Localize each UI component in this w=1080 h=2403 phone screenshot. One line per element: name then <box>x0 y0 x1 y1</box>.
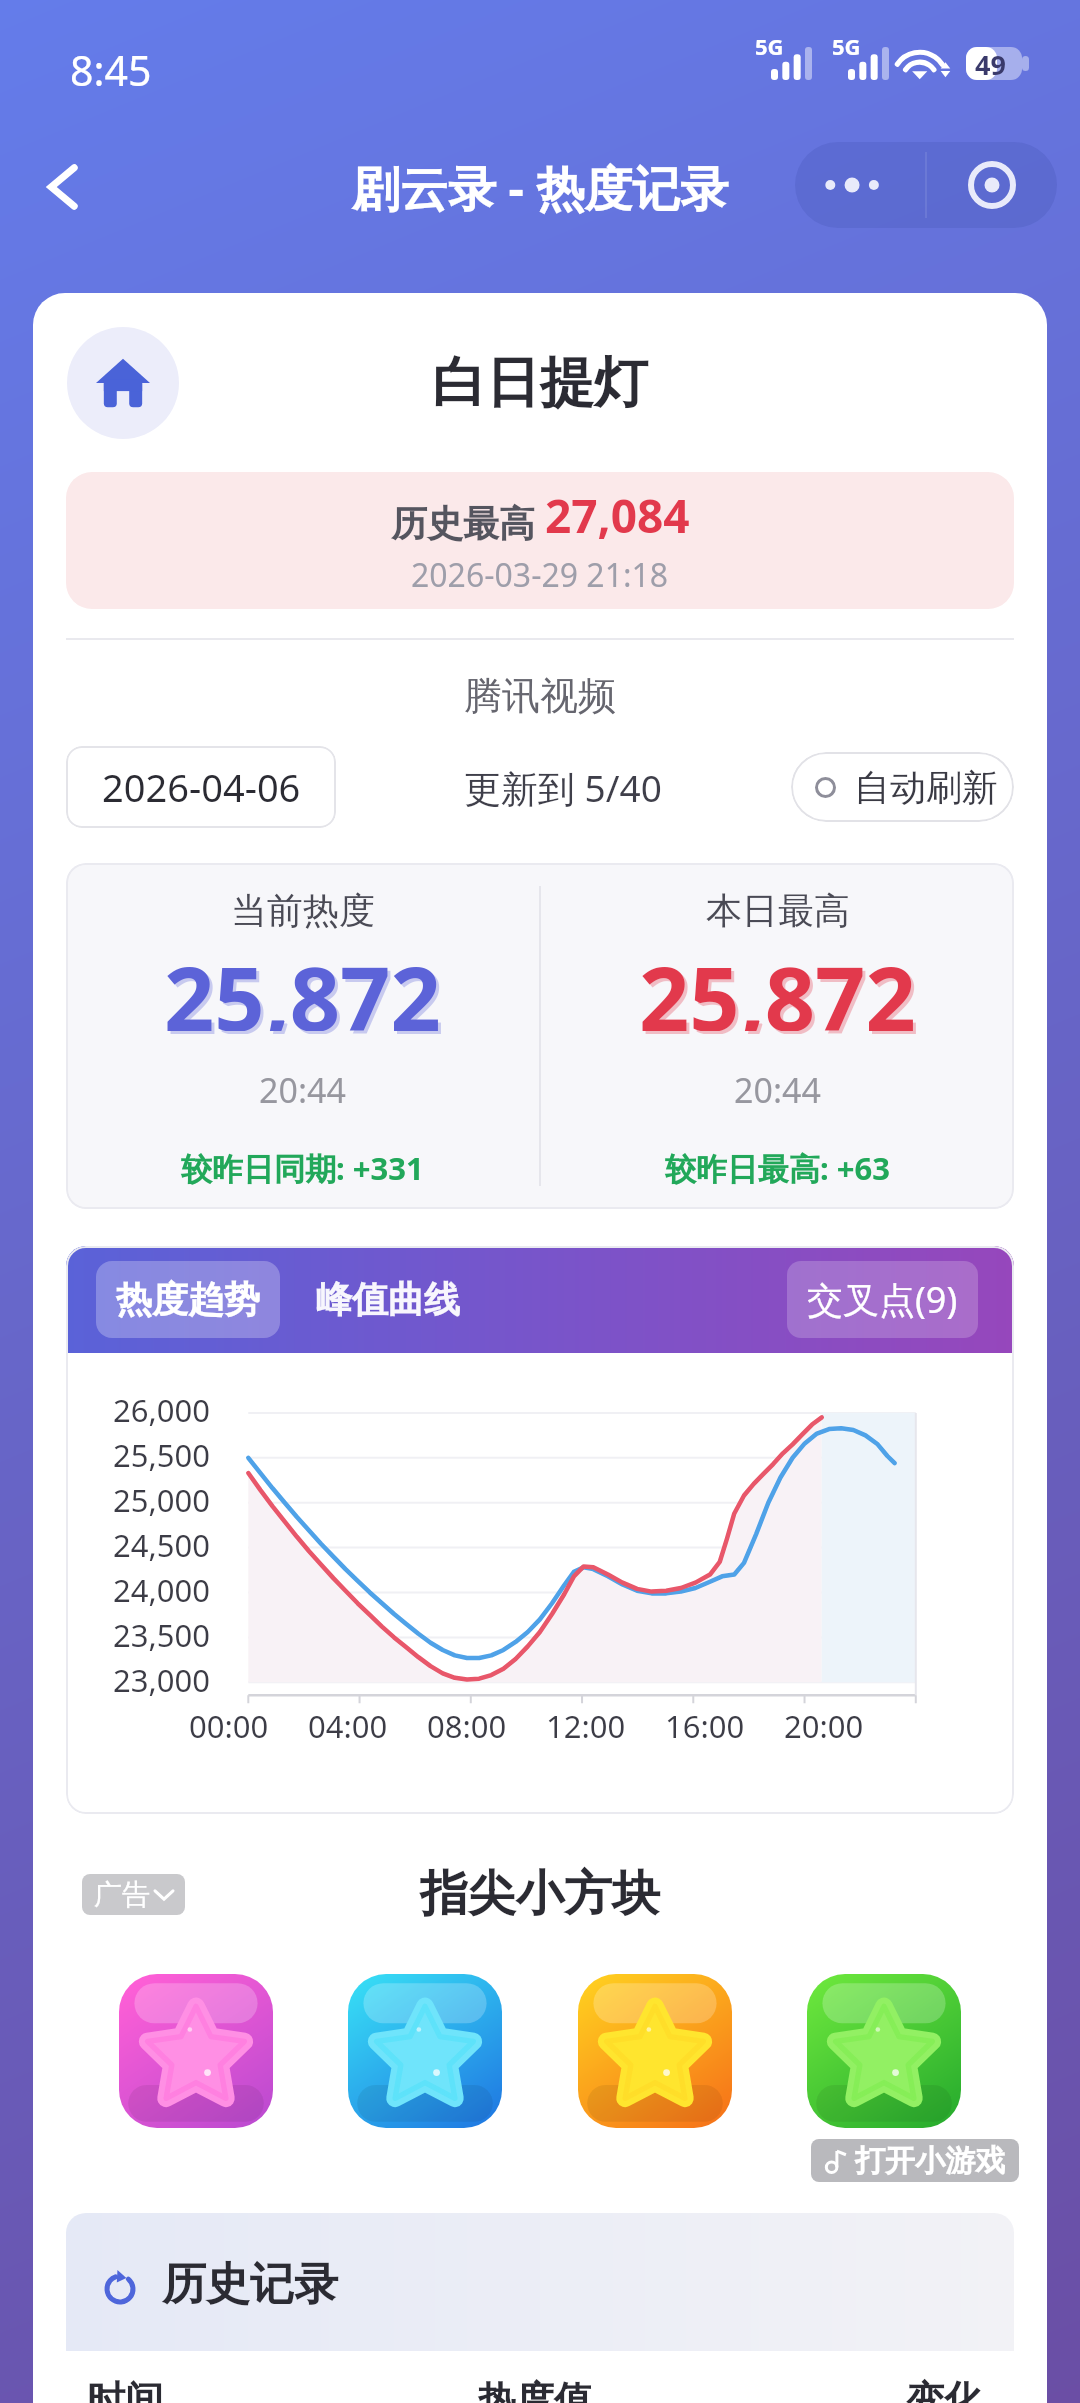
staticText: 20:44 <box>734 1067 821 1113</box>
button[interactable]: 交叉点(9) <box>787 1261 978 1338</box>
staticText: 00:00 <box>189 1705 269 1747</box>
button[interactable]: 峰值曲线 <box>296 1261 480 1338</box>
staticText: 峰值曲线 <box>316 1277 460 1322</box>
button[interactable]: Open mini game <box>807 1974 961 2128</box>
staticText: 本日最高 <box>706 888 850 933</box>
staticText: 较昨日最高: +63 <box>665 1147 890 1189</box>
button[interactable]: Back <box>32 155 96 219</box>
button[interactable]: Home <box>67 327 179 439</box>
staticText: 27,084 <box>545 484 690 547</box>
button[interactable]: 热度趋势 <box>96 1261 280 1338</box>
staticText: 23,500 <box>113 1614 210 1656</box>
staticText: 23,000 <box>113 1659 210 1701</box>
button[interactable]: More options <box>795 142 925 228</box>
staticText: 04:00 <box>308 1705 388 1747</box>
button[interactable]: Open mini game <box>348 1974 502 2128</box>
staticText: 当前热度 <box>231 888 375 933</box>
staticText: 打开小游戏 <box>855 2142 1005 2180</box>
staticText: 广告 <box>94 1877 150 1912</box>
staticText: 剧云录 - 热度记录 <box>352 155 729 221</box>
staticText: 24,500 <box>113 1524 210 1566</box>
staticText: 历史最高 <box>391 498 545 547</box>
staticText: 更新到 5/40 <box>464 762 662 813</box>
staticText: 交叉点(9) <box>807 1275 958 1324</box>
staticText: 24,000 <box>113 1569 210 1611</box>
staticText: 时间 <box>87 2376 386 2403</box>
staticText: 8:45 <box>70 42 152 98</box>
staticText: 2026-04-06 <box>102 761 301 813</box>
staticText: 16:00 <box>665 1705 745 1747</box>
staticText: 25,872 <box>639 937 916 1031</box>
staticText: 较昨日同期: +331 <box>181 1147 424 1189</box>
button[interactable]: 广告 <box>82 1874 185 1915</box>
button[interactable]: 2026-04-06 <box>66 746 336 828</box>
staticText: 26,000 <box>113 1389 210 1431</box>
button[interactable]: 自动刷新 <box>791 752 1014 822</box>
button[interactable]: Close mini program <box>927 142 1057 228</box>
staticText: 白日提灯 <box>432 349 648 417</box>
staticText: 指尖小方块 <box>420 1864 660 1924</box>
button[interactable]: 打开小游戏 <box>811 2139 1019 2182</box>
staticText: 25,872 <box>642 940 919 1034</box>
staticText: 49 <box>975 46 1006 79</box>
staticText: 热度趋势 <box>116 1277 260 1322</box>
staticText: 25,872 <box>167 940 444 1034</box>
staticText: 25,872 <box>164 937 441 1031</box>
staticText: 自动刷新 <box>854 765 998 810</box>
staticText: 5G <box>755 31 784 61</box>
staticText: 20:00 <box>784 1705 864 1747</box>
staticText: 变化 <box>684 2376 982 2403</box>
staticText: 20:44 <box>259 1067 346 1113</box>
staticText: 5G <box>832 31 861 61</box>
button[interactable]: Open mini game <box>578 1974 732 2128</box>
staticText: 25,000 <box>113 1479 210 1521</box>
staticText: 2026-03-29 21:18 <box>411 553 669 597</box>
staticText: 热度值 <box>386 2376 684 2403</box>
staticText: 腾讯视频 <box>33 672 1047 720</box>
staticText: 25,500 <box>113 1434 210 1476</box>
button[interactable]: 历史记录 <box>66 2213 1014 2351</box>
button[interactable]: Open mini game <box>119 1974 273 2128</box>
staticText: 历史记录 <box>162 2257 338 2312</box>
staticText: 12:00 <box>546 1705 626 1747</box>
staticText: 08:00 <box>427 1705 507 1747</box>
